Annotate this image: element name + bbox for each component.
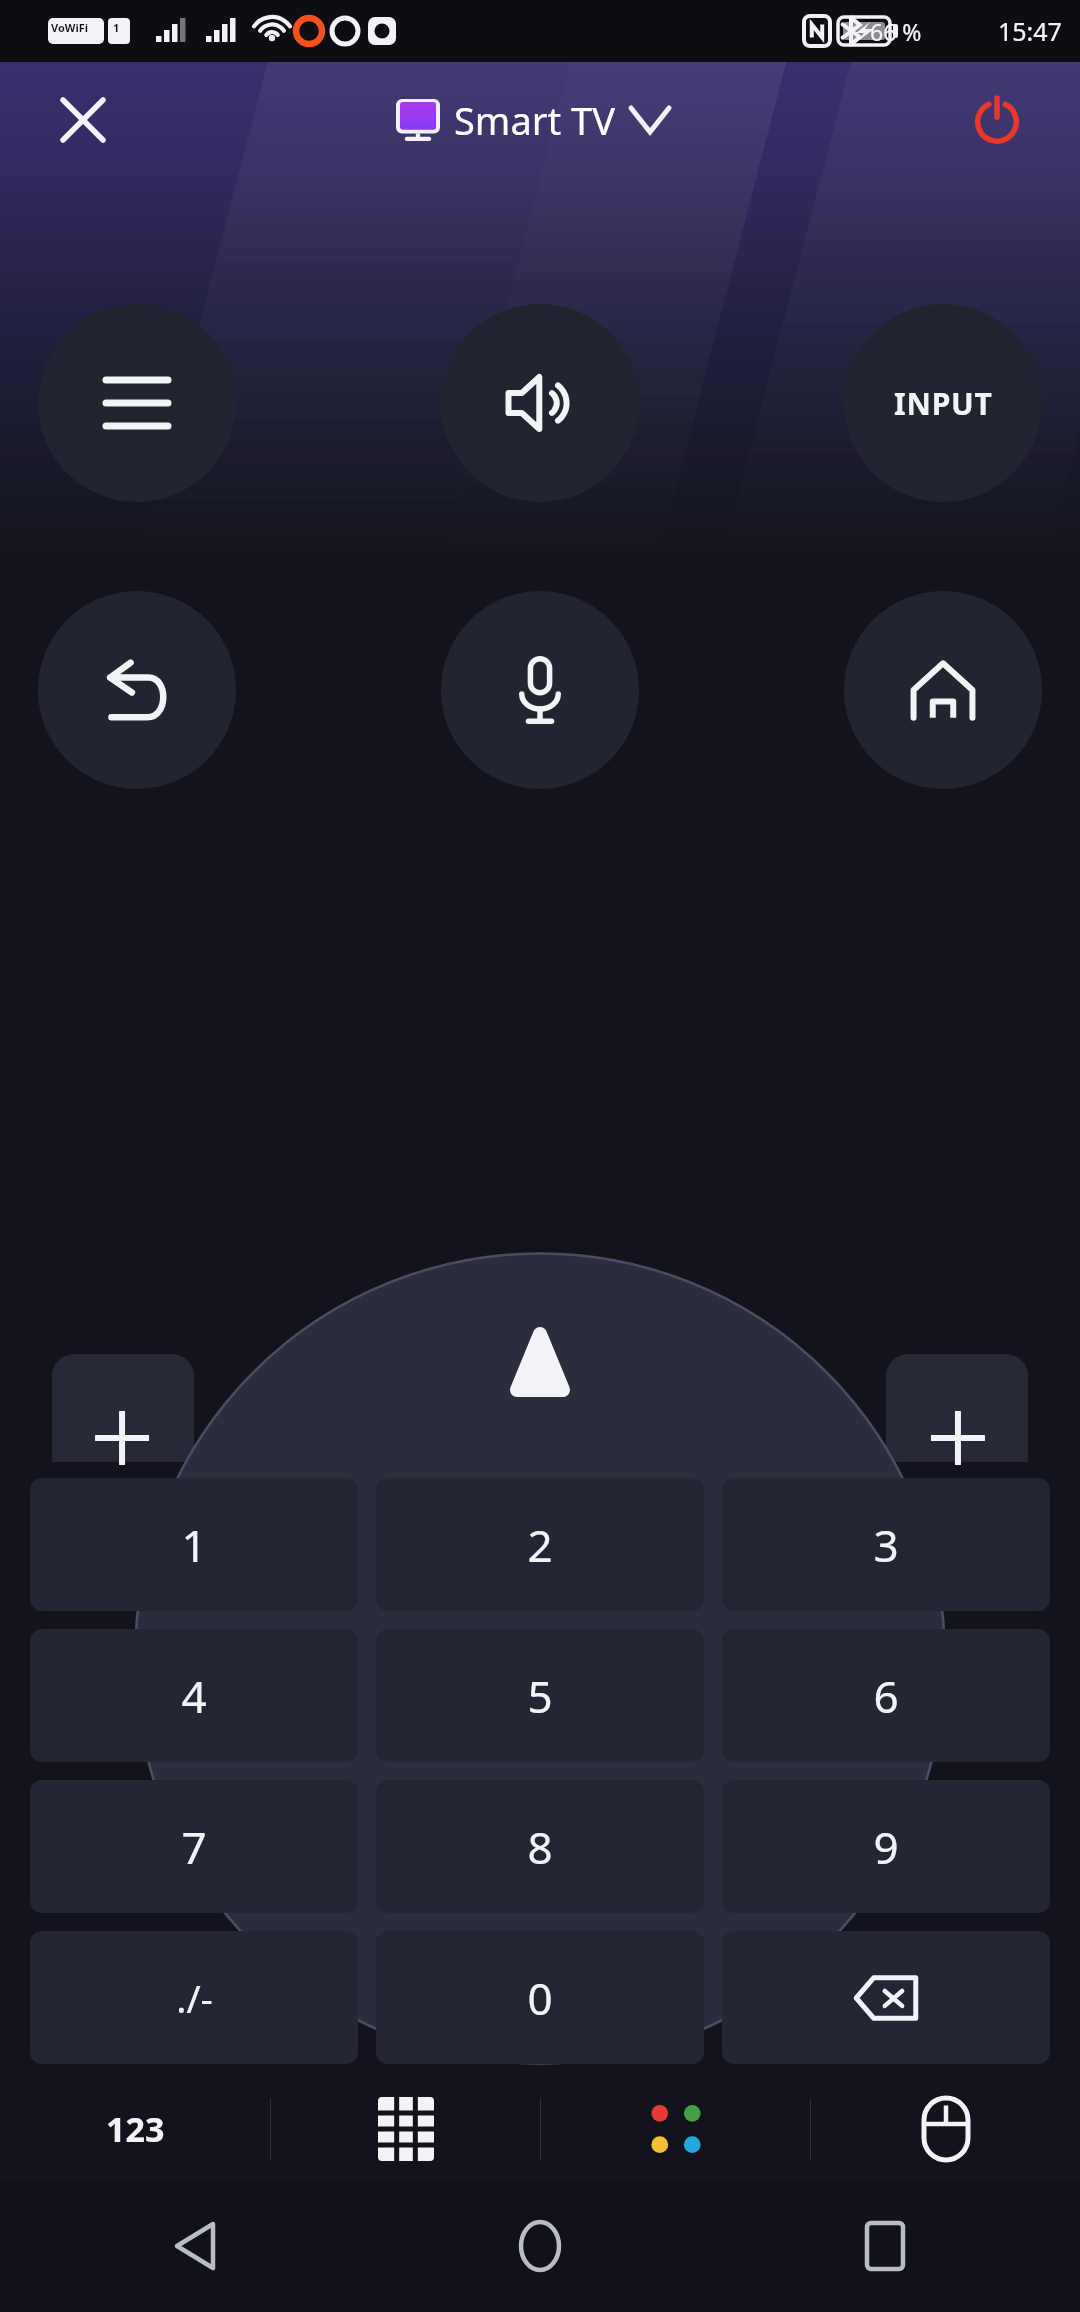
button[interactable]: Channel up <box>52 1354 194 1462</box>
button[interactable]: 6 <box>722 1629 1050 1762</box>
staticText: VoWiFi <box>51 20 89 35</box>
button[interactable]: Back <box>150 2201 240 2291</box>
staticText: ./- <box>176 1972 213 2024</box>
staticText: 15:47 <box>998 14 1062 48</box>
staticText: INPUT <box>894 383 993 424</box>
button[interactable]: ./- <box>30 1931 358 2064</box>
staticText: Smart TV <box>454 94 615 146</box>
button[interactable]: Menu <box>38 304 236 502</box>
button[interactable]: 9 <box>722 1780 1050 1913</box>
button[interactable]: 7 <box>30 1780 358 1913</box>
button[interactable]: Backspace <box>722 1931 1050 2064</box>
staticText: 66 % <box>870 16 922 47</box>
button[interactable]: 1 <box>30 1478 358 1611</box>
button[interactable]: 3 <box>722 1478 1050 1611</box>
button[interactable]: Keyboard <box>271 2078 540 2180</box>
staticText: 2 <box>527 1515 553 1575</box>
button[interactable]: Smart TV <box>396 94 669 146</box>
button[interactable]: Home <box>844 591 1042 789</box>
staticText: 3 <box>873 1515 899 1575</box>
button[interactable]: Input <box>844 304 1042 502</box>
button[interactable]: Touchpad <box>811 2078 1080 2180</box>
button[interactable]: 8 <box>376 1780 704 1913</box>
button[interactable]: 4 <box>30 1629 358 1762</box>
button[interactable]: Back <box>38 591 236 789</box>
staticText: 0 <box>527 1968 553 2028</box>
staticText: 6 <box>873 1666 899 1726</box>
staticText: 8 <box>527 1817 553 1877</box>
button[interactable]: Close <box>48 85 118 155</box>
button[interactable]: Recents <box>840 2201 930 2291</box>
button[interactable]: Power <box>962 85 1032 155</box>
button[interactable]: Color buttons <box>541 2078 810 2180</box>
staticText: 5 <box>527 1666 553 1726</box>
button[interactable]: Home <box>495 2201 585 2291</box>
button[interactable]: Voice search <box>441 591 639 789</box>
staticText: 7 <box>181 1817 207 1877</box>
button[interactable]: 0 <box>376 1931 704 2064</box>
button[interactable]: Volume <box>441 304 639 502</box>
button[interactable]: 123 <box>0 2078 270 2180</box>
button[interactable]: 5 <box>376 1629 704 1762</box>
button[interactable]: 2 <box>376 1478 704 1611</box>
staticText: 4 <box>181 1666 207 1726</box>
staticText: 1 <box>113 20 120 35</box>
staticText: 123 <box>106 2106 165 2152</box>
staticText: 9 <box>873 1817 899 1877</box>
button[interactable]: Volume up <box>886 1354 1028 1462</box>
staticText: 1 <box>181 1515 207 1575</box>
